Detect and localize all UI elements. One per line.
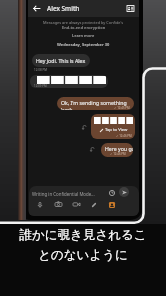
staticText: Writing in Confidential Mode...: [32, 191, 95, 197]
staticText: Tap to View: [105, 127, 128, 133]
staticText: 12:08 PM: [34, 68, 47, 72]
button[interactable]: Record voice message: [31, 199, 49, 210]
button[interactable]: Stickers: [103, 199, 121, 210]
staticText: Learn more: [72, 33, 95, 38]
button[interactable]: Ok, I'm sending something back: [57, 97, 134, 110]
button[interactable]: Hey Jodi. This is Alex: [32, 54, 90, 67]
button[interactable]: Record video: [67, 199, 85, 210]
button[interactable]: Learn more: [72, 33, 95, 38]
button[interactable]: Contact details: [125, 3, 136, 14]
staticText: End-to-end encryption: [62, 25, 106, 30]
staticText: ✓ 12:45 PM: [114, 106, 130, 110]
button[interactable]: Here you go: [101, 143, 133, 157]
staticText: 誰かに覗き見されるこ: [19, 227, 147, 243]
staticText: ✓ 12:46 PM: [110, 152, 126, 156]
button[interactable]: Tap to View: [91, 114, 135, 139]
button[interactable]: Message timer: [107, 188, 117, 198]
staticText: とのないように: [38, 247, 128, 263]
button[interactable]: Writing in Confidential Mode...: [32, 191, 95, 197]
button[interactable]: Take photo: [49, 199, 67, 210]
button[interactable]: 12:09 PM: [30, 75, 108, 88]
staticText: Messages are always protected by Confide…: [43, 20, 124, 25]
staticText: Hey Jodi. This is Alex: [36, 57, 86, 64]
staticText: Wednesday, September 30: [57, 42, 110, 47]
button[interactable]: Send: [119, 187, 129, 197]
staticText: Ok, I'm sending something back: [61, 99, 134, 110]
button[interactable]: Back: [31, 3, 42, 14]
staticText: Here you go: [105, 145, 133, 152]
staticText: Alex Smith: [47, 4, 80, 13]
staticText: ✓ 12:46 PM: [116, 134, 132, 138]
button[interactable]: Alex Smith: [47, 4, 80, 13]
staticText: 12:09 PM: [34, 84, 47, 88]
button[interactable]: Attach file: [85, 199, 103, 210]
